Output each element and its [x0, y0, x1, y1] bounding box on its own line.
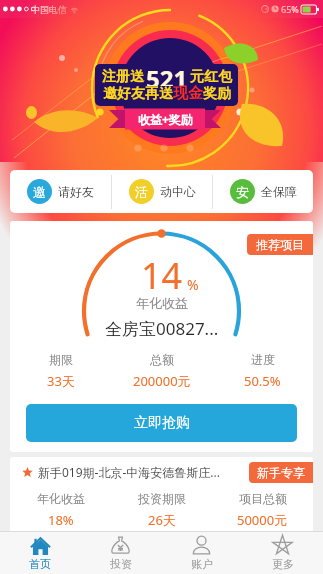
staticText: 首页 — [29, 557, 51, 571]
staticText: 65% — [281, 3, 299, 15]
button[interactable]: 立即抢购 — [26, 404, 297, 442]
staticText: 项目总额 — [239, 491, 287, 506]
button[interactable]: 推荐项目 — [247, 234, 313, 255]
staticText: 521 — [146, 62, 188, 86]
staticText: 中国电信 — [31, 4, 67, 15]
staticText: 邀好友再送 — [103, 85, 173, 103]
staticText: 18% — [48, 511, 74, 529]
staticText: 50.5% — [244, 372, 281, 390]
button[interactable]: More — [242, 532, 323, 574]
button[interactable]: 活 — [112, 170, 212, 213]
staticText: 奖励 — [203, 85, 231, 103]
staticText: 注册送 — [102, 68, 144, 86]
staticText: 总额 — [150, 352, 174, 367]
staticText: 活 — [135, 184, 148, 200]
staticText: 年化收益 — [136, 295, 188, 311]
staticText: 投资 — [110, 557, 132, 571]
staticText: 年化收益 — [37, 491, 85, 506]
staticText: 安 — [236, 184, 249, 200]
staticText: 动中心 — [160, 184, 196, 199]
staticText: 邀 — [33, 184, 46, 200]
staticText: 期限 — [49, 352, 73, 367]
staticText: 现金 — [173, 84, 203, 103]
staticText: 33天 — [47, 372, 75, 390]
staticText: 元红包 — [190, 68, 232, 86]
staticText: 进度 — [251, 352, 275, 367]
staticText: % — [187, 275, 199, 294]
staticText: 200000元 — [133, 372, 191, 390]
staticText: 新手专享 — [257, 465, 305, 480]
staticText: 立即抢购 — [134, 414, 190, 432]
staticText: 14 — [141, 251, 183, 300]
staticText: 推荐项目 — [256, 237, 304, 252]
staticText: 更多 — [272, 557, 294, 571]
staticText: 全保障 — [261, 184, 297, 199]
button[interactable]: 新手专享 — [249, 462, 313, 483]
staticText: 投资期限 — [138, 491, 186, 506]
staticText: 请好友 — [58, 184, 94, 199]
button[interactable]: 安 — [213, 170, 313, 213]
staticText: 26天 — [148, 511, 176, 529]
button[interactable]: Account — [161, 532, 242, 574]
staticText: 50000元 — [237, 511, 288, 529]
button[interactable]: 邀 — [10, 170, 111, 213]
staticText: 收益+奖励 — [138, 111, 193, 127]
staticText: 账户 — [191, 557, 213, 571]
staticText: 新手019期-北京-中海安德鲁斯庄... — [38, 464, 220, 480]
staticText: 上午9:02 — [152, 3, 188, 15]
button[interactable]: Home — [0, 532, 80, 574]
staticText: 全房宝00827... — [105, 317, 219, 340]
button[interactable]: Invest — [80, 532, 161, 574]
